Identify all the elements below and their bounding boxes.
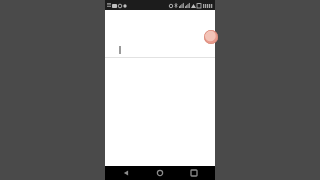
button[interactable]: Home (153, 166, 167, 180)
button[interactable]: Recent apps (187, 166, 201, 180)
button[interactable]: Back (119, 166, 133, 180)
button[interactable]: Profile (204, 30, 218, 44)
button[interactable] (105, 44, 215, 58)
